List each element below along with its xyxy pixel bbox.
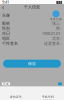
staticText: 昵称 xyxy=(2,21,10,26)
button[interactable]: 保存 xyxy=(3,60,61,68)
staticText: > xyxy=(60,26,62,31)
staticText: 这是签名 xyxy=(44,41,60,46)
button[interactable]: 生日 xyxy=(0,31,64,36)
staticText: 保存 xyxy=(28,61,36,66)
staticText: 手机号码 xyxy=(42,95,54,99)
staticText: 身份证号 xyxy=(10,95,22,99)
staticText: 个性签名 xyxy=(2,41,18,46)
staticText: 生日 xyxy=(2,31,10,36)
staticText: ‹ xyxy=(2,3,4,11)
staticText: 1990-01-01 xyxy=(42,31,60,36)
staticText: 9:41 xyxy=(2,0,9,5)
staticText: 更换头像 xyxy=(50,17,62,21)
staticText: > xyxy=(60,41,62,46)
button[interactable]: 头像 xyxy=(0,10,64,21)
staticText: 个人信息 xyxy=(24,4,40,9)
button[interactable]: 性别 xyxy=(0,26,64,31)
staticText: > xyxy=(60,36,62,41)
button[interactable]: 个性签名 xyxy=(0,41,64,46)
button[interactable]: Back xyxy=(2,3,4,11)
button[interactable]: 昵称 xyxy=(0,21,64,26)
staticText: 男 xyxy=(56,26,60,31)
button[interactable]: Send xyxy=(58,82,62,85)
staticText: 性别 xyxy=(2,26,10,31)
staticText: 完成 xyxy=(3,82,9,85)
staticText: 北京 xyxy=(52,36,60,41)
staticText: > xyxy=(60,21,62,26)
staticText: ▮▮▮ xyxy=(56,0,62,4)
staticText: 张三 xyxy=(52,21,60,26)
staticText: 地区 xyxy=(2,36,10,41)
staticText: > xyxy=(60,31,62,36)
staticText: 头像 xyxy=(2,13,10,18)
button[interactable]: 完成 xyxy=(2,82,10,85)
button[interactable]: 地区 xyxy=(0,36,64,41)
